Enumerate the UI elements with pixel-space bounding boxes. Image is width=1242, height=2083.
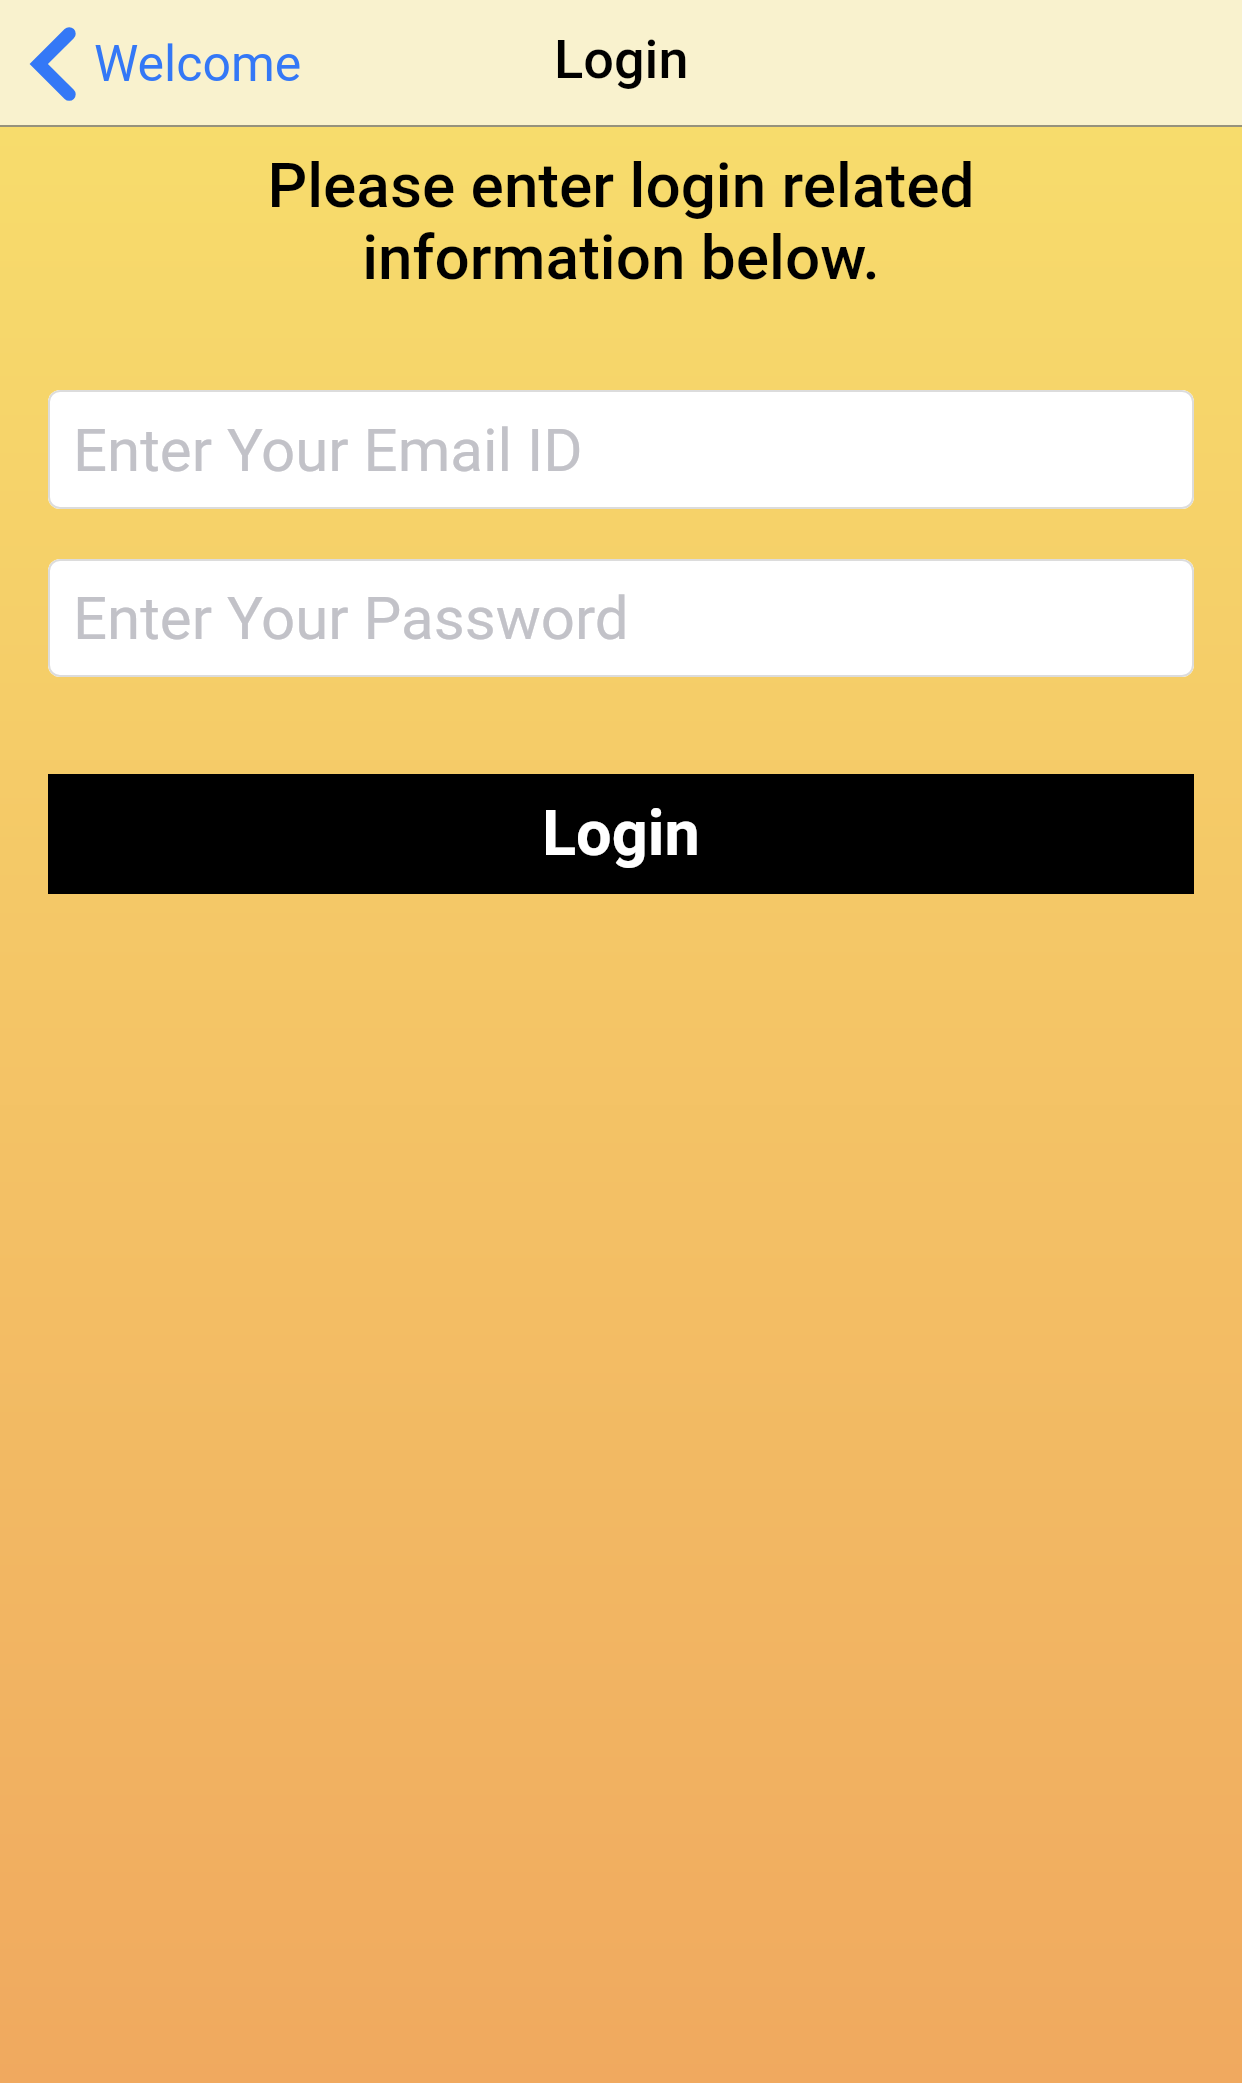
staticText: Login bbox=[542, 797, 700, 871]
staticText: Please enter login related information b… bbox=[0, 149, 1242, 294]
staticText: Login bbox=[554, 28, 689, 91]
staticText: Enter Your Password bbox=[73, 583, 629, 653]
staticText: Enter Your Email ID bbox=[73, 415, 583, 485]
staticText: Welcome bbox=[94, 35, 302, 94]
button[interactable]: Enter Your Password bbox=[48, 559, 1194, 677]
button[interactable]: Login bbox=[48, 774, 1194, 894]
button[interactable]: Enter Your Email ID bbox=[48, 390, 1194, 509]
button[interactable]: Welcome bbox=[34, 31, 302, 97]
